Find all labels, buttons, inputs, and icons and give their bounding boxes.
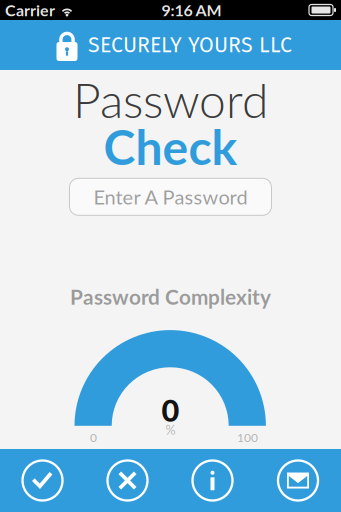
staticText: 0 [90, 430, 97, 445]
staticText: % [165, 422, 175, 437]
staticText: Carrier [5, 0, 55, 20]
button[interactable]: Enter A Password [69, 178, 271, 215]
staticText: 100 [237, 430, 258, 445]
button[interactable]: Clear [85, 449, 170, 512]
staticText: Enter A Password [93, 185, 247, 209]
staticText: SECURELY YOURS LLC [88, 32, 292, 58]
staticText: Password Complexity [70, 284, 271, 309]
staticText: Password [73, 70, 268, 128]
staticText: 0 [161, 391, 179, 428]
button[interactable]: Check password [0, 449, 85, 512]
button[interactable]: Info [170, 449, 255, 512]
staticText: 9:16 AM [161, 0, 221, 20]
staticText: Check [103, 117, 237, 175]
button[interactable]: Email [255, 449, 341, 512]
